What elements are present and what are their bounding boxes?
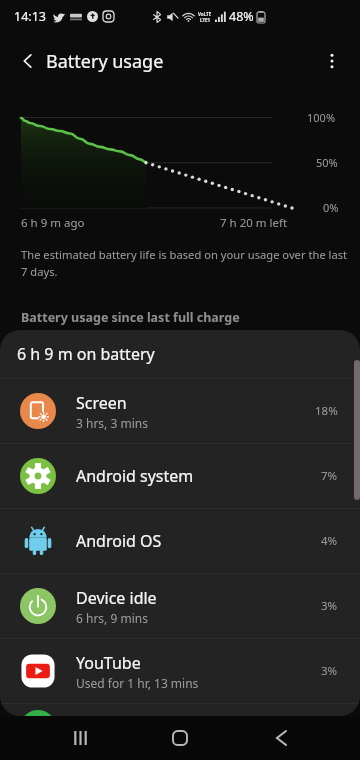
button[interactable]: Navigate up [8,41,48,81]
button[interactable]: More options [312,41,352,81]
staticText: Used for 1 hr, 13 mins [76,675,199,691]
staticText: 6 h 9 m ago [21,215,85,231]
button[interactable]: Recent apps [56,716,104,760]
staticText: YouTube [76,652,141,674]
staticText: Android system [76,465,194,487]
staticText: 0% [323,200,339,215]
staticText: Battery usage [46,49,164,74]
staticText: 6 h 9 m on battery [17,343,155,365]
staticText: 7% [321,468,338,484]
staticText: 18% [315,403,338,419]
staticText: The estimated battery life is based on y… [21,247,348,279]
staticText: 50% [316,155,338,170]
staticText: 6 hrs, 9 mins [76,610,148,626]
staticText: Battery usage since last full charge [21,309,240,326]
button[interactable]: Android OS [0,509,360,573]
staticText: 7 h 20 m left [220,215,288,231]
staticText: 3 hrs, 3 mins [76,415,148,431]
staticText: 48% [229,8,254,25]
button[interactable]: Android system [0,444,360,508]
staticText: Android OS [76,530,162,552]
button[interactable]: Device idle [0,574,360,638]
button[interactable]: Back [257,716,305,760]
staticText: VoLTE [198,11,212,17]
staticText: 100% [307,110,336,125]
staticText: Screen [76,392,127,414]
staticText: 4% [321,533,338,549]
staticText: 3% [321,663,338,679]
staticText: 3% [321,598,338,614]
button[interactable]: YouTube [0,639,360,703]
staticText: LTE1 [200,17,211,23]
button[interactable]: Home [156,716,204,760]
staticText: 14:13 [14,8,46,25]
button[interactable]: Screen [0,379,360,443]
staticText: Device idle [76,587,157,609]
